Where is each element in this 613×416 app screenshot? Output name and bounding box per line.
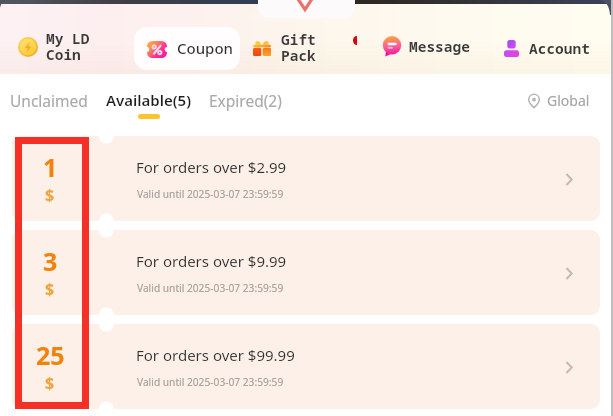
staticText: Account: [529, 38, 590, 58]
staticText: Coupon: [177, 38, 233, 58]
staticText: $: [45, 278, 55, 300]
button[interactable]: Expired(2): [203, 82, 288, 119]
staticText: For orders over $9.99: [136, 251, 287, 271]
other: Open coupon: [565, 362, 573, 373]
staticText: Unclaimed: [10, 90, 88, 111]
button[interactable]: Account: [504, 38, 590, 58]
button[interactable]: 1: [12, 136, 600, 221]
staticText: Message: [409, 36, 470, 56]
staticText: Valid until 2025-03-07 23:59:59: [137, 281, 284, 295]
button[interactable]: Gift Pack: [253, 29, 316, 66]
staticText: For orders over $2.99: [136, 157, 287, 177]
staticText: Valid until 2025-03-07 23:59:59: [137, 375, 284, 389]
button[interactable]: Message: [382, 36, 470, 56]
staticText: Valid until 2025-03-07 23:59:59: [137, 187, 284, 201]
button[interactable]: 25: [12, 324, 600, 409]
staticText: Available(5): [106, 90, 192, 110]
staticText: $: [45, 184, 55, 206]
staticText: 1: [43, 150, 58, 184]
staticText: Expired(2): [209, 90, 282, 111]
button[interactable]: My LD Coin: [18, 28, 90, 65]
staticText: Gift Pack: [281, 29, 316, 66]
button[interactable]: Global: [522, 85, 594, 116]
button[interactable]: 3: [12, 230, 600, 315]
staticText: $: [45, 372, 55, 394]
button[interactable]: Coupon: [134, 27, 240, 70]
staticText: Global: [547, 91, 590, 110]
staticText: 25: [36, 338, 65, 372]
button[interactable]: Collapse panel: [258, 0, 355, 18]
button[interactable]: Available(5): [100, 82, 198, 123]
other: Open coupon: [565, 174, 573, 185]
staticText: For orders over $99.99: [136, 345, 295, 365]
button[interactable]: Unclaimed: [4, 82, 94, 119]
other: Open coupon: [565, 268, 573, 279]
staticText: 3: [43, 244, 58, 278]
staticText: My LD Coin: [46, 28, 90, 65]
